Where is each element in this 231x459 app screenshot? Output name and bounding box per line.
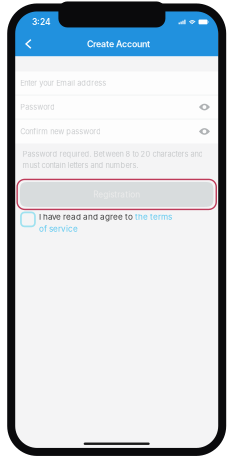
staticText: Create Account <box>87 39 150 49</box>
staticText: Password required. Between 8 to 20 chara… <box>22 149 203 158</box>
staticText: Enter your Email address <box>20 78 106 87</box>
button[interactable]: Show password <box>193 120 215 142</box>
staticText: the terms <box>135 212 172 222</box>
button[interactable]: Show password <box>193 96 215 118</box>
staticText: Registration <box>93 189 140 199</box>
staticText: Password <box>20 103 54 111</box>
button[interactable]: I have read and agree to <box>15 212 218 234</box>
staticText: 3:24 <box>32 17 51 27</box>
staticText: of service <box>39 224 78 234</box>
staticText: must contain letters and numbers. <box>22 161 138 170</box>
button[interactable]: Back <box>18 33 38 55</box>
staticText: I have read and agree to <box>39 212 135 222</box>
staticText: Confirm new password <box>20 127 101 136</box>
